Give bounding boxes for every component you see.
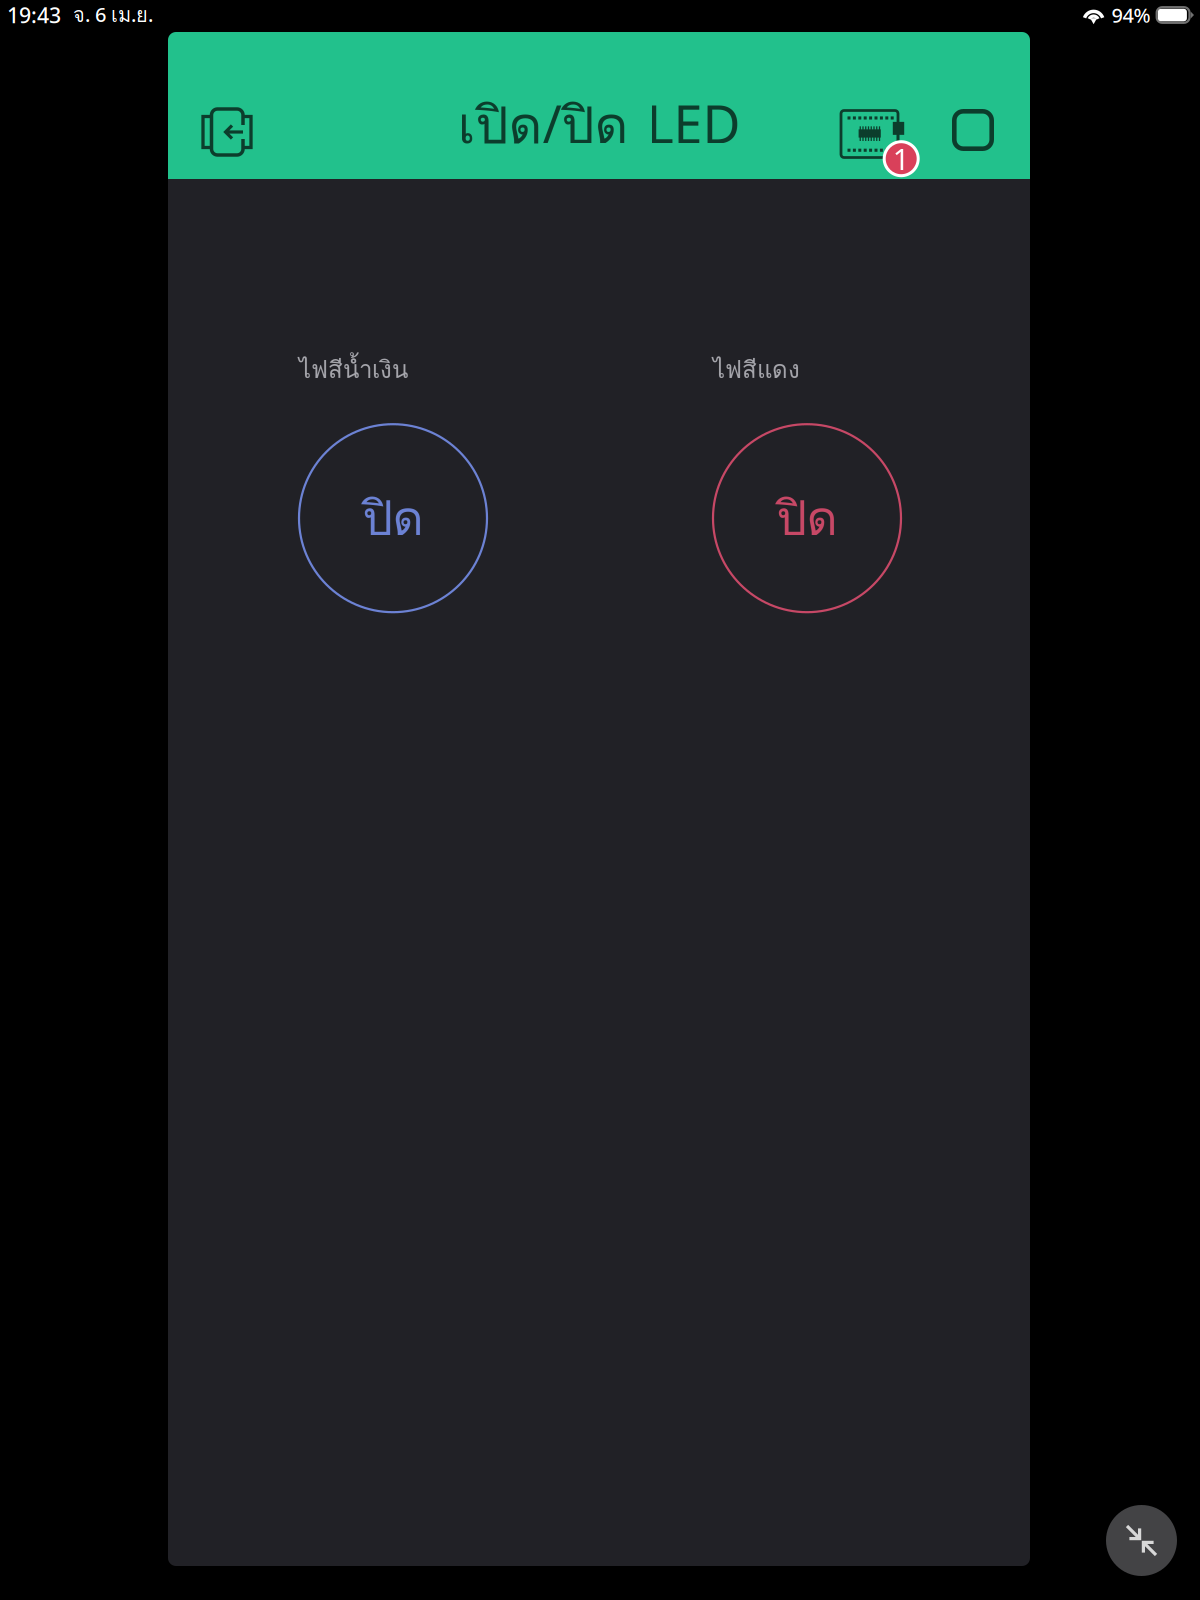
staticText: 19:43 — [7, 1, 61, 29]
button[interactable]: Connected boards, 1 — [841, 82, 920, 177]
staticText: 1 — [893, 139, 910, 178]
staticText: ปิด — [776, 481, 837, 555]
staticText: ไฟสีน้ำเงิน — [299, 351, 408, 388]
button[interactable]: Stop — [940, 95, 1006, 165]
button[interactable]: ปิด — [713, 424, 901, 612]
button[interactable]: Leave app — [193, 96, 261, 164]
staticText: จ. 6 เม.ย. — [73, 0, 153, 30]
staticText: ปิด — [362, 481, 423, 555]
staticText: 94% — [1112, 2, 1151, 28]
staticText: เปิด/ปิด LED — [457, 85, 740, 165]
button[interactable]: Exit full screen — [1106, 1505, 1177, 1576]
staticText: ไฟสีแดง — [713, 351, 800, 388]
button[interactable]: ปิด — [299, 424, 487, 612]
